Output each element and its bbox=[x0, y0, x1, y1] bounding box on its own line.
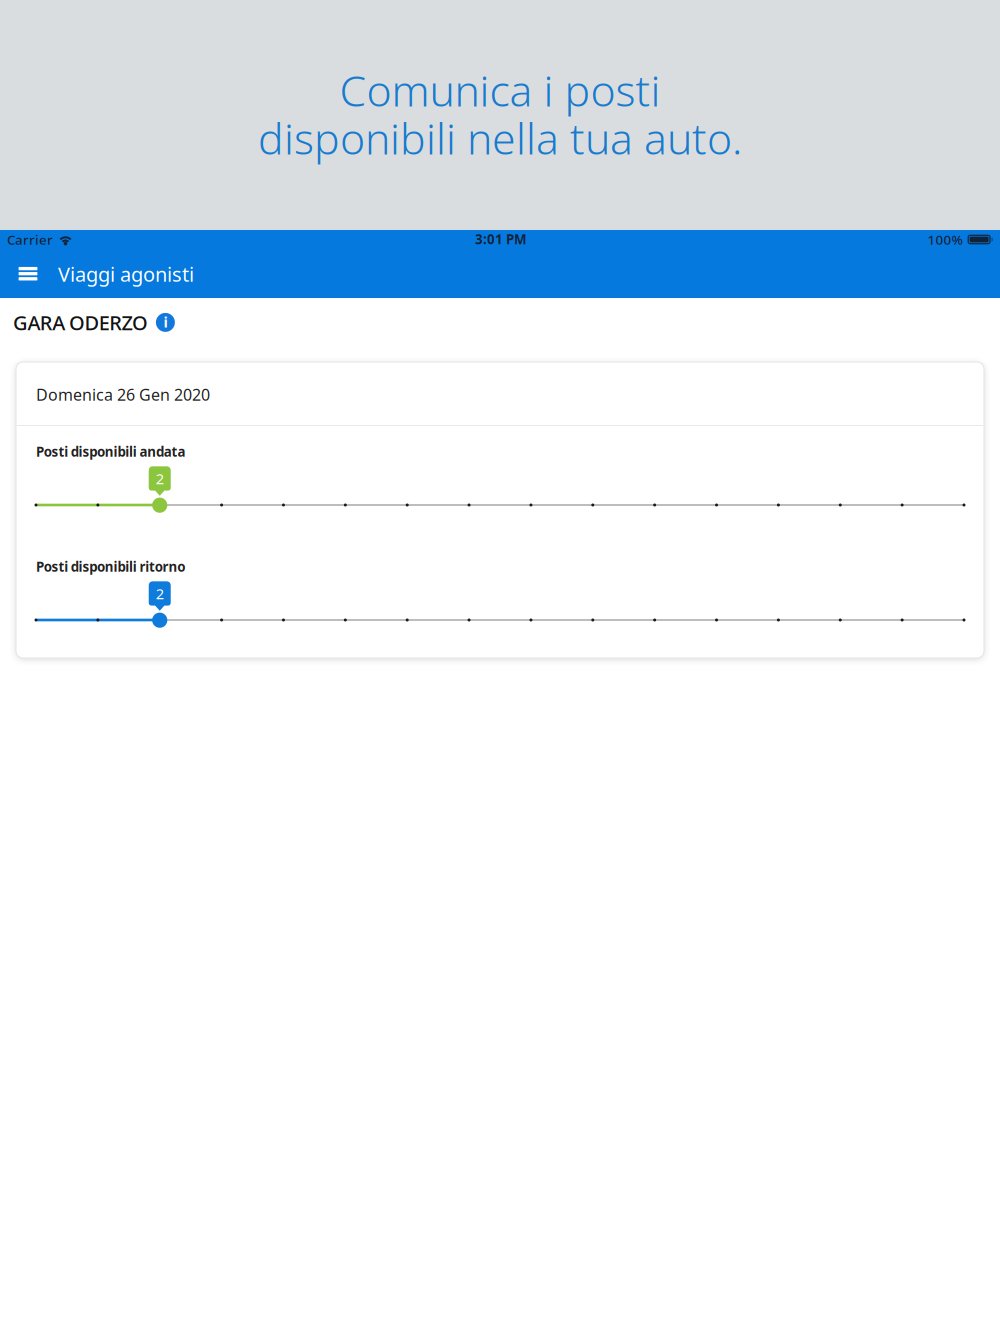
button[interactable]: Posti disponibili ritorno: 2 bbox=[28, 589, 972, 637]
staticText: Viaggi agonisti bbox=[58, 261, 194, 287]
staticText: Carrier bbox=[7, 231, 53, 248]
staticText: Posti disponibili ritorno bbox=[36, 558, 185, 575]
staticText: 2 bbox=[156, 469, 164, 488]
staticText: Domenica 26 Gen 2020 bbox=[36, 384, 210, 405]
staticText: i bbox=[163, 312, 167, 332]
staticText: Posti disponibili andata bbox=[36, 443, 185, 460]
staticText: 100% bbox=[928, 231, 963, 248]
staticText: 2 bbox=[156, 584, 164, 603]
button[interactable]: Menu bbox=[10, 256, 46, 292]
button[interactable]: Posti disponibili andata: 2 bbox=[28, 474, 972, 522]
staticText: GARA ODERZO bbox=[13, 309, 148, 336]
staticText: disponibili nella tua auto. bbox=[258, 110, 742, 166]
button[interactable]: Informazioni bbox=[150, 307, 180, 337]
staticText: 3:01 PM bbox=[475, 230, 527, 248]
staticText: Comunica i posti bbox=[339, 62, 660, 118]
